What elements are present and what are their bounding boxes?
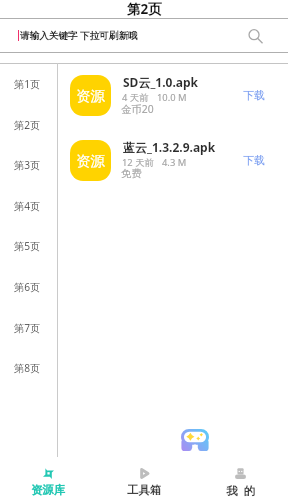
button[interactable]: 我 的	[192, 460, 288, 500]
staticText: 4.3 M	[162, 156, 187, 169]
button[interactable]: 下载	[241, 151, 267, 169]
button[interactable]: 第4页	[1, 185, 54, 226]
button[interactable]: Games	[181, 429, 209, 451]
staticText: 第2页	[14, 118, 41, 132]
button[interactable]: 资源库	[0, 460, 96, 500]
staticText: 下载	[243, 153, 265, 167]
staticText: 第2页	[127, 0, 162, 18]
staticText: 工具箱	[127, 483, 161, 497]
button[interactable]: 第3页	[1, 144, 54, 185]
button[interactable]: 第1页	[1, 63, 54, 104]
staticText: 第3页	[14, 158, 41, 172]
button[interactable]: 第8页	[1, 347, 54, 388]
staticText: 资源	[76, 87, 105, 105]
staticText: 第7页	[14, 321, 41, 335]
staticText: 第8页	[14, 361, 41, 375]
button[interactable]: 第5页	[1, 225, 54, 266]
staticText: 12 天前	[122, 156, 154, 169]
staticText: 第5页	[14, 239, 41, 253]
button[interactable]: Search	[244, 25, 266, 47]
staticText: 免费	[121, 167, 142, 180]
staticText: 第6页	[14, 280, 41, 294]
button[interactable]: 工具箱	[96, 460, 192, 500]
staticText: SD云_1.0.apk	[123, 74, 199, 90]
button[interactable]: 第7页	[1, 307, 54, 348]
staticText: 我 的	[226, 483, 255, 498]
staticText: 4 天前	[122, 91, 149, 104]
staticText: 10.0 M	[157, 91, 187, 104]
button[interactable]: 第2页	[1, 104, 54, 145]
staticText: 资源	[76, 152, 105, 170]
staticText: 蓝云_1.3.2.9.apk	[123, 139, 216, 155]
staticText: 资源库	[31, 483, 65, 497]
staticText: 下载	[243, 88, 265, 102]
button[interactable]: 下载	[241, 86, 267, 104]
staticText: 金币20	[121, 102, 154, 116]
staticText: 第4页	[14, 199, 41, 213]
staticText: 第1页	[14, 77, 41, 91]
button[interactable]: 资源	[0, 75, 288, 119]
button[interactable]: 第6页	[1, 266, 54, 307]
button[interactable]: 资源	[0, 140, 288, 184]
staticText: 请输入关键字 下拉可刷新哦	[20, 29, 138, 42]
